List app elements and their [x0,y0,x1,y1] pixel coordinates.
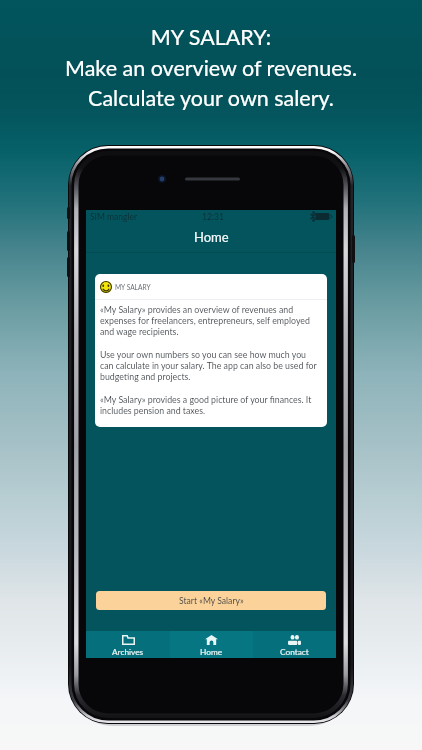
button[interactable]: Home [170,631,253,658]
staticText: Archives [112,647,144,657]
staticText: Use your own numbers so you can see how … [100,349,320,382]
button[interactable]: Start «My Salary» [96,591,326,610]
staticText: Home [200,647,223,657]
button[interactable]: Archives [86,631,170,658]
button[interactable]: Contact [253,631,336,658]
staticText: Contact [280,647,309,657]
staticText: Start «My Salary» [179,596,244,606]
staticText: Home [194,229,229,245]
staticText: MY SALARY: Make an overview of revenues.… [65,24,357,111]
staticText: «My Salary» provides an overview of reve… [100,304,320,337]
other: Archives [122,635,135,645]
staticText: 12:31 [202,212,224,222]
staticText: «My Salary» provides a good picture of y… [100,394,320,416]
other: Home [205,635,218,645]
other: Contact [288,635,301,645]
staticText: MY SALARY [115,283,151,291]
staticText: SIM mangler [90,212,138,222]
button[interactable]: MY SALARY [95,274,327,427]
